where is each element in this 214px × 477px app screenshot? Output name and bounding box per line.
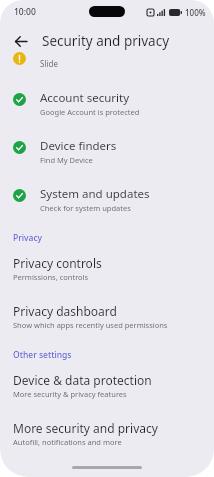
staticText: Account security [40,90,130,106]
button[interactable]: Device & data protection [0,365,214,406]
staticText: Autofill, notifications and more [13,437,122,447]
staticText: Device finders [40,138,117,154]
button[interactable]: Privacy dashboard [0,296,214,337]
button[interactable]: Back [6,27,34,55]
staticText: Slide [40,58,58,69]
staticText: 10:00 [14,6,36,18]
staticText: Device & data protection [13,372,152,388]
staticText: 100% [185,7,206,18]
staticText: Privacy dashboard [13,303,117,319]
button[interactable]: Account security [0,83,214,124]
staticText: Show which apps recently used permission… [13,320,168,330]
button[interactable]: Privacy controls [0,248,214,289]
staticText: Check for system updates [40,203,131,213]
button[interactable]: System and updates [0,179,214,220]
staticText: Permissions, controls [13,272,89,282]
button[interactable]: More security and privacy [0,413,214,454]
staticText: System and updates [40,186,150,202]
staticText: Other settings [13,349,72,361]
staticText: Privacy controls [13,255,102,271]
staticText: More security & privacy features [13,389,127,399]
button[interactable]: Device finders [0,131,214,172]
staticText: Privacy [13,232,43,244]
staticText: More security and privacy [13,420,158,436]
staticText: Security and privacy [42,32,170,50]
staticText: Find My Device [40,155,93,165]
staticText: Google Account is protected [40,107,140,117]
button[interactable]: Slide [0,58,214,71]
